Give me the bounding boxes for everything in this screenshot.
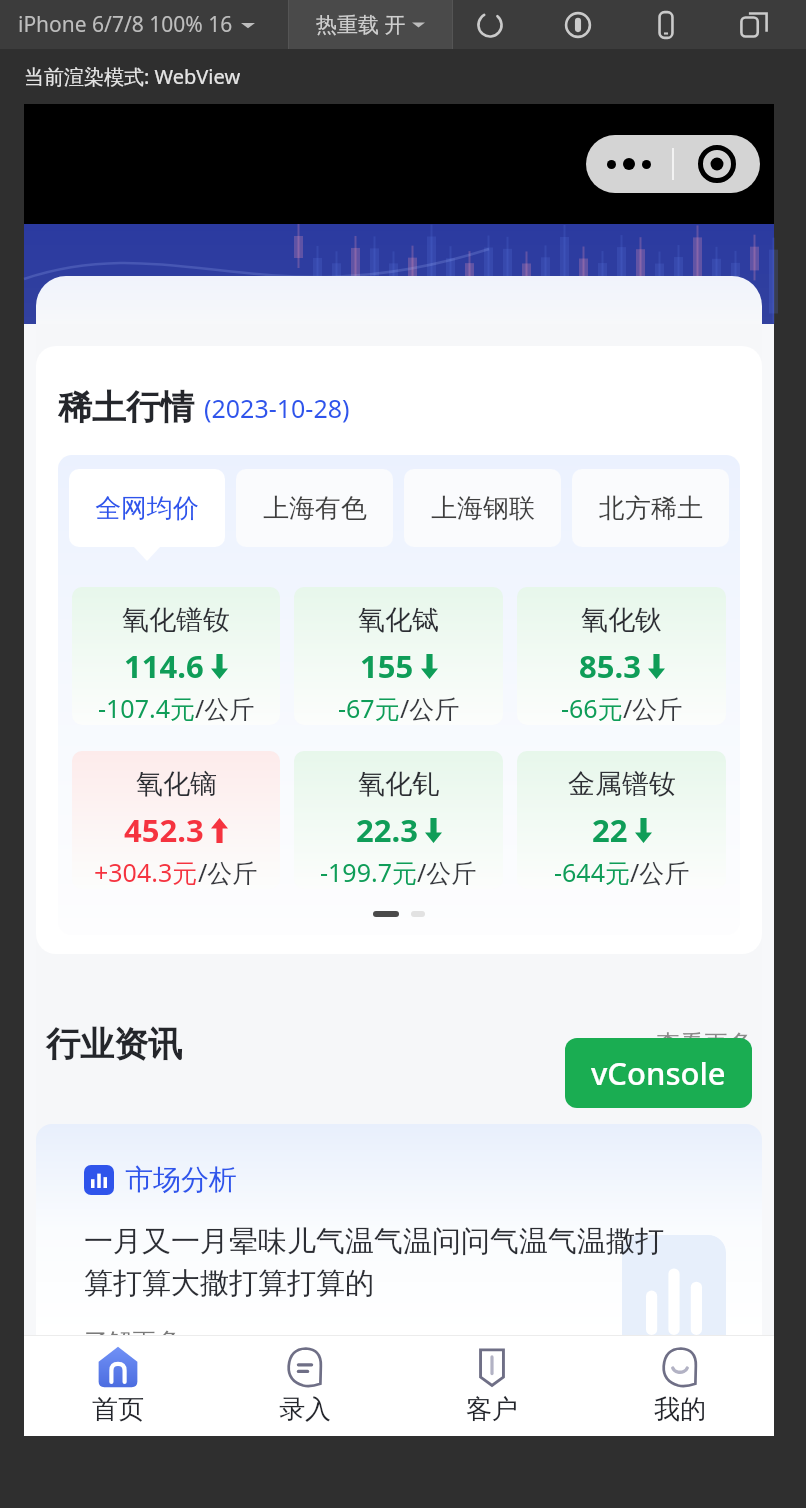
staticText: 155 [360,645,414,687]
staticText: 一月又一月晕味儿气温气温问问气温气温撒打 算打算大撒打算打算的 [84,1223,664,1302]
button[interactable]: 氧化钬 [517,587,726,725]
staticText: -67元 [338,691,400,725]
staticText: 452.3 [124,809,204,851]
staticText: /公斤 [400,691,460,725]
button[interactable]: 金属镨钕 [517,751,726,889]
button[interactable]: Device [644,3,688,47]
staticText: 22 [592,809,628,851]
staticText: 氧化钆 [358,767,439,801]
staticText: 金属镨钕 [568,767,676,801]
button[interactable]: 首页 [24,1335,211,1436]
button[interactable]: Split view [732,3,776,47]
staticText: -644元 [554,855,630,889]
staticText: 氧化镝 [136,767,217,801]
button[interactable]: 北方稀土 [572,469,729,547]
button[interactable]: 市场分析 [36,1124,762,1335]
button[interactable]: 录入 [211,1335,398,1436]
staticText: vConsole [591,1052,726,1094]
staticText: 我的 [654,1393,706,1426]
staticText: /公斤 [623,691,683,725]
staticText: -66元 [561,691,623,725]
staticText: 上海有色 [263,492,367,525]
staticText: 首页 [92,1393,144,1426]
staticText: 22.3 [356,809,418,851]
staticText: 全网均价 [95,492,199,525]
staticText: iPhone 6/7/8 100% 16 [18,10,233,39]
button[interactable]: 了解更多>> [84,1324,208,1335]
button[interactable]: 热重载 开 [289,0,452,49]
staticText: 氧化铽 [358,603,439,637]
button[interactable]: 上海有色 [236,469,393,547]
staticText: (2023-10-28) [204,391,350,425]
staticText: 上海钢联 [431,492,535,525]
staticText: 客户 [466,1393,518,1426]
button[interactable]: Refresh [468,3,512,47]
staticText: 北方稀土 [599,492,703,525]
button[interactable]: 客户 [398,1335,586,1436]
button[interactable]: 氧化铽 [294,587,503,725]
staticText: /公斤 [195,691,255,725]
staticText: 氧化镨钕 [122,603,230,637]
staticText: 氧化钬 [581,603,662,637]
staticText: 热重载 开 [316,10,406,39]
staticText: -199.7元 [320,855,417,889]
staticText: 当前渲染模式: WebView [24,63,241,90]
staticText: /公斤 [630,855,690,889]
staticText: -107.4元 [98,691,195,725]
button[interactable]: vConsole [565,1038,752,1108]
staticText: +304.3元 [94,855,198,889]
staticText: 行业资讯 [46,1023,182,1066]
button[interactable]: 氧化镨钕 [72,587,280,725]
staticText: /公斤 [198,855,258,889]
button[interactable]: 我的 [586,1335,774,1436]
staticText: 市场分析 [125,1162,237,1197]
staticText: 稀土行情 [58,386,194,429]
button[interactable]: 氧化镝 [72,751,280,889]
staticText: 录入 [279,1393,331,1426]
button[interactable]: Close [674,135,760,193]
staticText: 85.3 [579,645,641,687]
button[interactable]: 全网均价 [69,469,225,547]
button[interactable]: Stop [556,3,600,47]
button[interactable]: 氧化钆 [294,751,503,889]
staticText: 114.6 [124,645,204,687]
button[interactable]: 查看更多 [656,1029,752,1059]
button[interactable]: More [586,135,672,193]
button[interactable]: 上海钢联 [404,469,561,547]
button[interactable]: iPhone 6/7/8 100% 16 [0,0,288,49]
staticText: /公斤 [417,855,477,889]
